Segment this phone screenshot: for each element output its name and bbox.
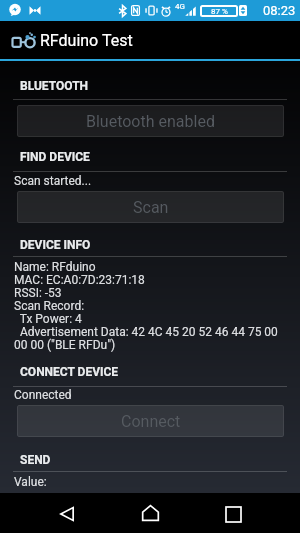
button[interactable]: Scan: [17, 191, 284, 223]
button[interactable]: Bluetooth enabled: [17, 105, 284, 137]
button[interactable]: Home: [126, 496, 174, 530]
staticText: Scan: [133, 198, 169, 217]
staticText: BLUETOOTH: [20, 79, 89, 93]
staticText: CONNECT DEVICE: [20, 365, 119, 379]
staticText: 87 %: [211, 7, 228, 16]
staticText: Connect: [121, 412, 181, 431]
staticText: Value:: [14, 475, 47, 489]
button[interactable]: Recent apps: [209, 496, 257, 530]
staticText: 08:23: [263, 3, 296, 18]
button[interactable]: Back: [43, 496, 91, 530]
staticText: 4G: [175, 2, 185, 11]
staticText: DEVICE INFO: [20, 238, 91, 252]
staticText: SEND: [20, 453, 51, 467]
staticText: Name: RFduino MAC: EC:A0:7D:23:71:18 RSS…: [14, 260, 289, 352]
staticText: Bluetooth enabled: [86, 112, 215, 131]
staticText: Connected: [14, 388, 72, 402]
staticText: FIND DEVICE: [20, 150, 90, 164]
button[interactable]: Connect: [17, 405, 284, 437]
staticText: Scan started...: [14, 174, 92, 188]
staticText: RFduino Test: [40, 31, 133, 50]
